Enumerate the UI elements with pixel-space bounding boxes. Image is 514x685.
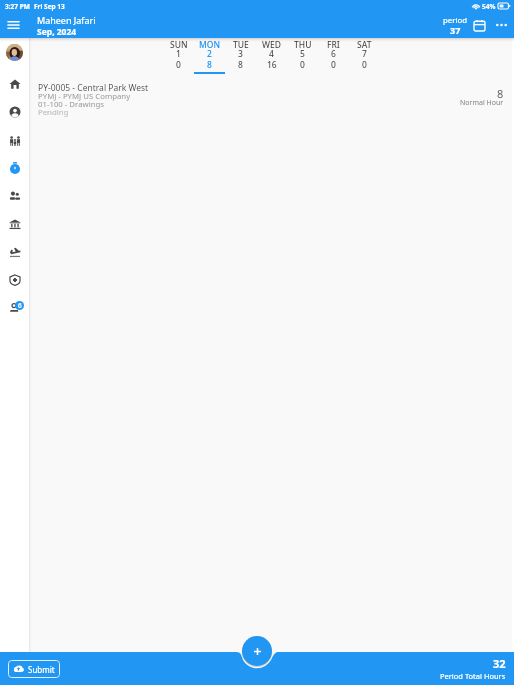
button[interactable]: Timesheet [0, 154, 29, 182]
staticText: 01-100 - Drawings [38, 99, 104, 110]
staticText: 7 [362, 48, 367, 60]
staticText: 3 [238, 48, 243, 60]
staticText: Maheen Jafari [37, 14, 96, 26]
button[interactable]: TUE [225, 39, 256, 72]
staticText: 0 [331, 59, 336, 71]
staticText: 32 [493, 656, 506, 671]
staticText: PY-0005 - Central Park West [38, 82, 149, 94]
staticText: Period Total Hours [440, 671, 506, 681]
staticText: FRI [327, 39, 340, 51]
button[interactable]: WED [256, 39, 287, 72]
staticText: PYMJ - PYMJ US Company [38, 91, 131, 102]
staticText: 4 [269, 48, 274, 60]
staticText: 0 [300, 59, 305, 71]
button[interactable]: SAT [349, 39, 380, 72]
staticText: 8 [207, 59, 212, 71]
button[interactable]: THU [287, 39, 318, 72]
staticText: SUN [170, 39, 188, 51]
staticText: 1 [176, 48, 181, 60]
staticText: 37 [450, 24, 461, 36]
button[interactable]: Add entry [242, 636, 272, 666]
staticText: period [443, 15, 467, 26]
button[interactable]: Company [0, 210, 29, 238]
staticText: Submit [28, 664, 55, 675]
button[interactable]: Submit [8, 660, 60, 678]
button[interactable]: Menu [0, 12, 26, 38]
button[interactable]: Requests [0, 294, 29, 322]
staticText: Sep, 2024 [37, 26, 77, 38]
staticText: 6 [331, 48, 336, 60]
button[interactable]: Profile [6, 44, 23, 61]
button[interactable]: More options [490, 14, 512, 36]
staticText: 3:27 PM [5, 2, 30, 11]
staticText: TUE [233, 39, 249, 51]
staticText: Normal Hour [460, 98, 504, 108]
button[interactable]: Team [0, 182, 29, 210]
staticText: 6 [18, 301, 22, 310]
button[interactable]: FRI [318, 39, 349, 72]
button[interactable]: Home [0, 70, 29, 98]
button[interactable]: SUN [163, 39, 194, 72]
staticText: 54% [482, 2, 496, 11]
button[interactable]: Crew [0, 126, 29, 154]
staticText: Pending [38, 107, 69, 118]
staticText: Fri Sep 13 [34, 2, 65, 11]
button[interactable]: Safety [0, 266, 29, 294]
staticText: SAT [357, 39, 372, 51]
staticText: 5 [300, 48, 305, 60]
button[interactable]: PY-0005 - Central Park West [29, 77, 514, 124]
staticText: 0 [176, 59, 181, 71]
staticText: WED [262, 39, 281, 51]
staticText: 16 [267, 59, 277, 71]
button[interactable]: Calendar [468, 14, 490, 36]
button[interactable]: Time off [0, 238, 29, 266]
staticText: 8 [497, 86, 504, 101]
button[interactable]: MON [194, 39, 225, 74]
staticText: 0 [362, 59, 367, 71]
staticText: MON [199, 39, 221, 51]
staticText: THU [294, 39, 312, 51]
button[interactable]: Account [0, 98, 29, 126]
staticText: 8 [238, 59, 243, 71]
staticText: 2 [207, 48, 212, 60]
